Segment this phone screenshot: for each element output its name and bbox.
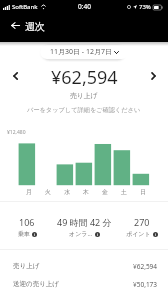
button[interactable]: 売り上げ bbox=[13, 260, 158, 272]
button[interactable]: 木 bbox=[76, 143, 93, 185]
button[interactable]: 土 bbox=[114, 143, 131, 185]
button[interactable]: 月 bbox=[19, 143, 36, 185]
button[interactable]: 水 bbox=[57, 143, 74, 185]
button[interactable]: Next week bbox=[142, 65, 164, 87]
staticText: 水 bbox=[64, 188, 70, 196]
staticText: i bbox=[155, 232, 157, 237]
staticText: ポイント bbox=[126, 230, 151, 238]
button[interactable]: 送迎の売り上げ bbox=[13, 278, 158, 290]
staticText: 木 bbox=[83, 188, 89, 196]
staticText: i bbox=[34, 232, 36, 237]
staticText: 売り上げ bbox=[13, 262, 40, 270]
button[interactable]: 270 bbox=[115, 216, 168, 238]
staticText: SoftBank bbox=[12, 3, 38, 11]
staticText: 売り上げ bbox=[70, 91, 98, 100]
staticText: ¥62,594 bbox=[51, 65, 118, 90]
staticText: 火 bbox=[45, 188, 51, 196]
staticText: 送迎の売り上げ bbox=[13, 280, 59, 288]
staticText: ¥12,480 bbox=[7, 129, 26, 136]
staticText: 106 bbox=[19, 216, 35, 228]
staticText: バーをタップして詳細をご確認ください bbox=[27, 106, 141, 114]
staticText: 週次 bbox=[25, 20, 45, 33]
staticText: 270 bbox=[134, 216, 150, 228]
staticText: 土 bbox=[121, 188, 127, 196]
staticText: オンラ… bbox=[69, 230, 93, 238]
staticText: 金 bbox=[102, 188, 108, 196]
staticText: i bbox=[97, 232, 99, 237]
button[interactable]: 49 時間 42 分 bbox=[54, 216, 115, 238]
button[interactable]: Previous week bbox=[4, 65, 26, 87]
staticText: 73% bbox=[139, 3, 151, 11]
button[interactable]: 日 bbox=[133, 143, 150, 185]
staticText: 月 bbox=[26, 188, 32, 196]
button[interactable]: 金 bbox=[95, 143, 112, 185]
staticText: ¥62,594 bbox=[133, 262, 158, 271]
staticText: 日 bbox=[140, 188, 146, 196]
button[interactable]: Back bbox=[4, 14, 27, 37]
staticText: 11月30日 - 12月7日 bbox=[50, 47, 112, 57]
button[interactable]: 106 bbox=[0, 216, 54, 238]
staticText: 0:40 bbox=[78, 2, 91, 11]
staticText: 乗車 bbox=[18, 230, 30, 238]
button[interactable]: 11月30日 - 12月7日 bbox=[40, 45, 129, 59]
staticText: 49 時間 42 分 bbox=[57, 216, 112, 228]
staticText: ¥50,173 bbox=[133, 280, 158, 289]
